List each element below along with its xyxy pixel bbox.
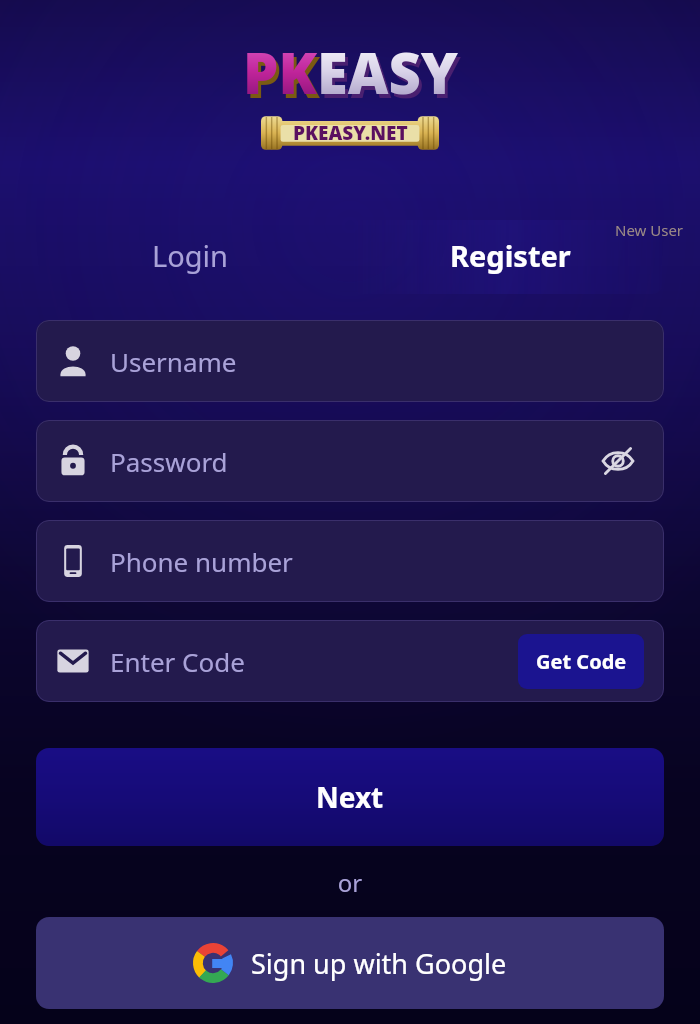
staticText: Next xyxy=(316,778,384,816)
staticText: Login xyxy=(152,236,228,275)
staticText: New User xyxy=(615,220,684,240)
staticText: Phone number xyxy=(110,544,644,579)
staticText: Username xyxy=(110,344,644,379)
staticText: Enter Code xyxy=(110,644,518,679)
button[interactable]: Sign up with Google xyxy=(36,917,664,1009)
staticText: EASY xyxy=(320,38,461,114)
staticText: EASY xyxy=(317,34,458,110)
button[interactable]: Get Code xyxy=(518,634,644,689)
button[interactable]: Phone number xyxy=(36,520,664,602)
staticText: Sign up with Google xyxy=(251,945,507,982)
staticText: Register xyxy=(450,236,571,275)
button[interactable]: Username xyxy=(36,320,664,402)
staticText: Get Code xyxy=(536,648,627,675)
staticText: Password xyxy=(110,444,592,479)
button[interactable]: Enter Code xyxy=(36,620,664,702)
button[interactable]: Password xyxy=(36,420,664,502)
button[interactable]: Login xyxy=(30,218,350,292)
staticText: PKEASY.NET xyxy=(293,120,408,146)
staticText: PK xyxy=(246,38,320,114)
button[interactable]: Next xyxy=(36,748,664,846)
staticText: PK xyxy=(243,34,317,110)
button[interactable]: Toggle password visibility xyxy=(592,435,644,487)
button[interactable]: Register xyxy=(350,218,670,292)
staticText: or xyxy=(36,866,664,899)
